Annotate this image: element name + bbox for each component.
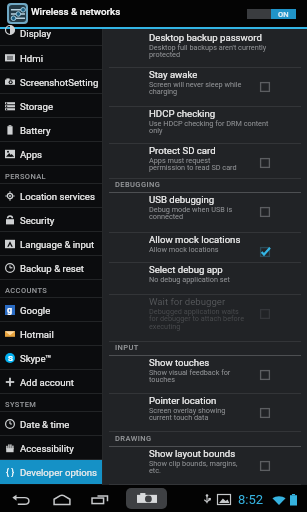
staticText: S [8, 354, 13, 363]
button[interactable]: Security [0, 208, 102, 232]
button[interactable]: Wi-Fi on off switch [247, 9, 296, 19]
button[interactable]: USB debugging [103, 193, 307, 233]
button[interactable]: Language & input [0, 232, 102, 256]
button[interactable]: Display [0, 21, 102, 38]
staticText: Stay awake [149, 69, 198, 80]
staticText: Use HDCP checking for DRM content only [149, 119, 269, 135]
staticText: INPUT [115, 343, 139, 352]
staticText: Pointer location [149, 395, 217, 406]
staticText: Allow mock locations [149, 234, 241, 245]
button[interactable]: Allow mock locations [103, 233, 307, 263]
staticText: HDCP checking [149, 108, 216, 119]
button[interactable]: Pointer location [103, 394, 307, 432]
button[interactable]: Hotmail [0, 322, 102, 346]
button[interactable]: ScreenshotSetting [0, 70, 102, 94]
staticText: Desktop backup password [149, 32, 262, 43]
staticText: No debug application set [149, 275, 230, 284]
staticText: Hotmail [20, 329, 54, 340]
staticText: PERSONAL [5, 172, 47, 181]
staticText: ScreenshotSetting [20, 77, 99, 88]
staticText: Accessibility [20, 443, 74, 454]
staticText: Date & time [20, 419, 70, 430]
button[interactable]: Add account [0, 370, 102, 394]
staticText: Battery [20, 125, 51, 136]
staticText: Add account [20, 377, 74, 388]
staticText: Screen overlay showing current touch dat… [149, 406, 226, 422]
staticText: Debugged application waits for debugger … [149, 307, 245, 331]
staticText: USB debugging [149, 194, 215, 205]
staticText: Display [20, 28, 51, 39]
staticText: Storage [20, 101, 53, 112]
staticText: Wait for debugger [149, 296, 226, 307]
button[interactable]: g [0, 298, 102, 322]
button[interactable]: Home [50, 488, 73, 511]
staticText: Hdmi [20, 53, 44, 64]
button[interactable]: Stay awake [103, 68, 307, 107]
button[interactable]: Apps [0, 142, 102, 166]
staticText: Show clip bounds, margins, etc. [149, 459, 238, 475]
button[interactable]: Accessibility [0, 436, 102, 460]
staticText: { } [6, 467, 15, 477]
button[interactable]: Recent apps [89, 488, 110, 509]
staticText: Screen will never sleep while charging [149, 80, 242, 96]
button[interactable]: Location services [0, 184, 102, 208]
button[interactable]: Show touches [103, 356, 307, 394]
button[interactable]: Wait for debugger [103, 295, 307, 342]
button[interactable]: Show layout bounds [103, 447, 307, 485]
staticText: Desktop full backups aren't currently pr… [149, 43, 267, 59]
staticText: Show layout bounds [149, 448, 236, 459]
staticText: Show visual feedback for touches [149, 368, 231, 384]
staticText: Developer options [20, 467, 97, 478]
staticText: Apps must request permission to read SD … [149, 156, 237, 172]
staticText: Apps [20, 149, 42, 160]
staticText: 8:52 [238, 492, 264, 507]
staticText: Select debug app [149, 264, 223, 275]
button[interactable]: Battery [0, 118, 102, 142]
button[interactable]: { } [0, 460, 102, 484]
staticText: Language & input [20, 239, 95, 250]
button[interactable]: Select debug app [103, 263, 307, 295]
button[interactable]: S [0, 346, 102, 370]
button[interactable]: Hdmi [0, 46, 102, 70]
button[interactable]: Date & time [0, 412, 102, 436]
staticText: Debug mode when USB is connected [149, 205, 233, 221]
staticText: Allow mock locations [149, 245, 219, 254]
button[interactable]: Storage [0, 94, 102, 118]
staticText: Backup & reset [20, 263, 84, 274]
staticText: Skype™ [20, 353, 52, 364]
button[interactable]: Screenshot [126, 488, 167, 509]
staticText: Google [20, 305, 51, 316]
button[interactable]: Protect SD card [103, 144, 307, 179]
staticText: DEBUGGING [115, 180, 161, 189]
staticText: Wireless & networks [31, 6, 121, 17]
staticText: Protect SD card [149, 145, 216, 156]
staticText: Security [20, 215, 55, 226]
button[interactable]: Wireless and networks [9, 5, 26, 22]
button[interactable]: Back [9, 488, 32, 511]
staticText: Location services [20, 191, 95, 202]
button[interactable]: HDCP checking [103, 107, 307, 144]
staticText: DRAWING [115, 434, 152, 443]
button[interactable]: Desktop backup password [103, 31, 307, 68]
staticText: g [7, 305, 13, 315]
staticText: SYSTEM [5, 400, 37, 409]
staticText: Show touches [149, 357, 210, 368]
staticText: ACCOUNTS [5, 286, 48, 295]
staticText: ON [278, 10, 289, 19]
button[interactable]: Backup & reset [0, 256, 102, 280]
